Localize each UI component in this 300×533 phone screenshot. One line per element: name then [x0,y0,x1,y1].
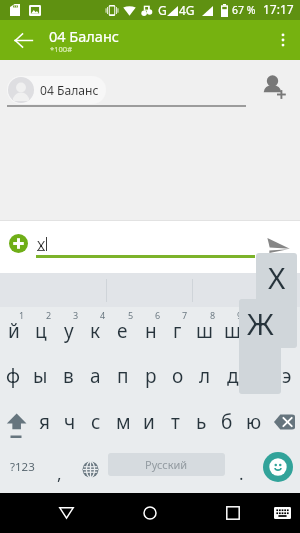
button[interactable]: с [83,400,109,444]
staticText: д [227,363,239,389]
staticText: а [90,363,101,389]
button[interactable]: п [109,354,136,398]
staticText: з [255,318,265,344]
button[interactable]: Add contact [258,70,292,104]
staticText: б [221,409,233,435]
staticText: ?123 [10,459,35,475]
button[interactable]: м [110,400,136,444]
button[interactable]: н [137,309,164,353]
button[interactable]: э [273,354,300,398]
staticText: н [145,318,157,344]
button[interactable]: . [228,448,255,490]
button[interactable]: Back [0,20,46,60]
staticText: м [116,409,131,435]
staticText: 8 [210,309,216,321]
button[interactable]: з [246,309,273,353]
staticText: 04 Баланс [40,82,99,98]
button[interactable]: л [191,354,218,398]
button[interactable]: щ [219,309,246,353]
button[interactable]: Back [46,493,86,533]
staticText: е [117,318,128,344]
button[interactable]: ы [27,354,54,398]
staticText: 0 [264,309,270,321]
staticText: ц [35,318,47,344]
button[interactable]: 04 Баланс [7,76,106,104]
staticText: Х [37,236,46,255]
button[interactable]: Recents [213,493,253,533]
button[interactable]: More options [266,20,300,60]
button[interactable]: Add attachment [6,231,31,256]
staticText: 4 [100,309,106,321]
button[interactable]: а [82,354,109,398]
button[interactable]: в [55,354,82,398]
button[interactable]: б [214,400,240,444]
staticText: г [173,318,182,344]
button[interactable]: ф [0,354,27,398]
button[interactable]: к [82,309,109,353]
staticText: щ [224,318,242,344]
staticText: . [239,462,244,485]
button[interactable]: т [162,400,188,444]
button[interactable]: я [31,400,57,444]
button[interactable]: Backspace [268,400,300,444]
staticText: ю [246,409,262,435]
staticText: л [199,363,211,389]
staticText: в [63,363,74,389]
button[interactable]: д [219,354,246,398]
staticText: 67 % [232,3,256,17]
button[interactable]: х [273,309,300,353]
button[interactable]: у [55,309,82,353]
button[interactable]: ж [246,354,273,398]
staticText: ф [6,363,21,389]
button[interactable]: ?123 [2,446,43,488]
staticText: Русский [145,457,188,472]
staticText: 17:17 [263,1,294,17]
button[interactable]: Emoji [262,451,294,483]
staticText: 5 [128,309,134,321]
staticText: ь [196,409,207,435]
staticText: 7 [182,309,188,321]
staticText: 3 [73,309,79,321]
button[interactable]: е [109,309,136,353]
staticText: э [282,363,292,389]
button[interactable]: р [137,354,164,398]
staticText: й [8,318,20,344]
staticText: я [39,409,50,435]
button[interactable]: г [164,309,191,353]
staticText: 9 [237,309,243,321]
staticText: , [57,462,62,485]
staticText: Ж [247,303,274,343]
staticText: т [171,409,180,435]
staticText: ы [33,363,48,389]
button[interactable]: Русский [108,453,225,476]
staticText: и [143,409,155,435]
button[interactable]: й [0,309,27,353]
staticText: р [145,363,157,389]
staticText: у [64,318,74,344]
staticText: 4G [179,2,195,18]
staticText: п [117,363,129,389]
button[interactable]: Shift [0,400,32,444]
staticText: о [172,363,184,389]
button[interactable]: ц [27,309,54,353]
staticText: ш [196,318,213,344]
button[interactable]: Send [262,232,296,258]
button[interactable]: и [136,400,162,444]
button[interactable]: о [164,354,191,398]
staticText: 6 [155,309,161,321]
staticText: Х [268,257,286,297]
staticText: с [91,409,101,435]
button[interactable]: ю [241,400,267,444]
button[interactable]: ь [188,400,214,444]
staticText: 1 [19,309,25,321]
staticText: *100# [50,44,73,54]
button[interactable]: , [46,448,73,490]
button[interactable]: Switch keyboard [264,493,300,533]
button[interactable]: ш [191,309,218,353]
button[interactable]: Change language [76,448,104,490]
button[interactable]: ч [57,400,83,444]
button[interactable]: Home [130,493,170,533]
staticText: ч [64,409,76,435]
